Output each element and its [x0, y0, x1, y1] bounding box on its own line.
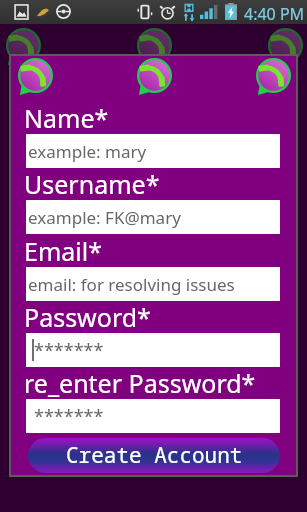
staticText: Password*: [24, 300, 151, 334]
staticText: Create Account: [66, 441, 243, 470]
staticText: Name*: [24, 101, 109, 135]
button[interactable]: Tab 2: [135, 28, 174, 67]
staticText: Username*: [24, 167, 160, 201]
button[interactable]: email: for resolving issues: [26, 267, 280, 301]
staticText: 4:40 PM: [244, 3, 305, 25]
staticText: example: FK@mary: [28, 206, 181, 229]
button[interactable]: Tab 1: [4, 28, 43, 67]
button[interactable]: Create Account: [28, 438, 280, 473]
button[interactable]: *******: [26, 333, 280, 367]
button[interactable]: example: mary: [26, 134, 280, 168]
staticText: re_enter Password*: [24, 366, 256, 400]
staticText: *******: [34, 338, 104, 363]
button[interactable]: example: FK@mary: [26, 200, 280, 234]
button[interactable]: Contact 3: [254, 58, 293, 97]
staticText: *******: [34, 404, 104, 429]
button[interactable]: *******: [26, 399, 280, 433]
staticText: example: mary: [28, 140, 147, 163]
staticText: Email*: [24, 234, 102, 268]
button[interactable]: Contact 1: [16, 58, 55, 97]
button[interactable]: Tab 3: [266, 28, 305, 67]
button[interactable]: Contact 2: [135, 58, 174, 97]
staticText: email: for resolving issues: [28, 273, 235, 296]
